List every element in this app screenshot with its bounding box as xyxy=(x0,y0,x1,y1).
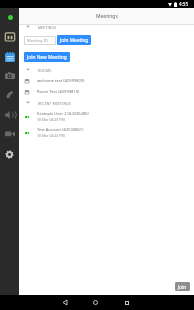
button[interactable]: Room Test (#2999810) xyxy=(19,86,194,97)
button[interactable]: Join xyxy=(175,282,190,291)
button[interactable]: Back xyxy=(54,295,75,310)
button[interactable]: ROOMS xyxy=(19,65,194,74)
button[interactable]: Example User 2 (#3236286) xyxy=(19,110,194,123)
staticText: Join Meeting xyxy=(60,37,89,44)
button[interactable]: RECENT MEETINGS xyxy=(19,98,194,107)
button[interactable]: Settings xyxy=(0,145,19,163)
staticText: welcome test (#2999809) xyxy=(37,78,85,84)
button[interactable]: Recents xyxy=(116,295,137,310)
button[interactable]: MEETINGS xyxy=(19,22,194,31)
staticText: Join New Meeting xyxy=(27,54,67,61)
staticText: 18 Mar 04:29 PM xyxy=(37,117,65,122)
staticText: Meeting ID xyxy=(27,38,48,43)
button[interactable]: Volume xyxy=(0,106,19,124)
staticText: Join xyxy=(178,284,187,290)
button[interactable]: Rooms xyxy=(0,28,19,46)
staticText: 18 Mar 04:24 PM xyxy=(37,133,65,138)
button[interactable]: Video xyxy=(0,125,19,143)
button[interactable]: Calendar xyxy=(0,48,19,66)
button[interactable]: Join New Meeting xyxy=(24,52,70,62)
staticText: Meetings xyxy=(96,13,118,20)
staticText: RECENT MEETINGS xyxy=(38,101,71,105)
button[interactable]: Phone xyxy=(0,86,19,104)
button[interactable]: welcome test (#2999809) xyxy=(19,75,194,86)
staticText: Test Account (#2530861) xyxy=(37,127,84,133)
staticText: Room Test (#2999810) xyxy=(37,89,80,95)
button[interactable]: Home xyxy=(85,295,106,310)
staticText: ROOMS xyxy=(38,68,52,72)
button[interactable]: Camera xyxy=(0,67,19,85)
staticText: Example User 2 (#3236286) xyxy=(37,111,89,117)
staticText: MEETINGS xyxy=(38,25,57,29)
button[interactable]: Test Account (#2530861) xyxy=(19,126,194,139)
button[interactable]: Meeting ID xyxy=(24,36,56,45)
staticText: 4:55 xyxy=(179,1,189,7)
button[interactable]: Join Meeting xyxy=(57,35,91,45)
